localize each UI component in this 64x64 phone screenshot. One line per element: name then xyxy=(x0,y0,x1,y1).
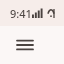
staticText: 9:41 xyxy=(10,6,32,21)
button[interactable]: Open navigation menu xyxy=(8,28,42,62)
